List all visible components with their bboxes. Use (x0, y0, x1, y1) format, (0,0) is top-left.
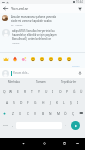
button[interactable]: N (47, 110, 53, 116)
staticText: Ü (80, 89, 83, 93)
staticText: L (63, 100, 65, 104)
staticText: D (20, 100, 23, 104)
button[interactable]: React (55, 54, 64, 63)
button[interactable]: adipsi5555 Sonulbo heryerinizi bu (2, 29, 83, 45)
button[interactable]: React (28, 54, 37, 63)
button[interactable]: React (46, 54, 55, 63)
button[interactable]: React (37, 54, 46, 63)
button[interactable]: E (15, 88, 21, 94)
button[interactable]: Voice input (77, 70, 83, 76)
button[interactable]: Ö (62, 110, 68, 116)
button[interactable]: Comma (10, 121, 15, 129)
staticText: E (17, 89, 19, 93)
button[interactable]: Back (18, 138, 28, 148)
button[interactable]: Tamam (36, 80, 46, 84)
staticText: C (27, 111, 30, 115)
staticText: Bonulhost0, cetim belirlendi ve (12, 37, 52, 41)
button[interactable]: U (43, 88, 49, 94)
button[interactable]: Backspace (77, 107, 85, 119)
button[interactable]: D (18, 99, 24, 105)
button[interactable]: Ç (70, 110, 76, 116)
staticText: Q (3, 89, 6, 93)
button[interactable]: B (40, 110, 46, 116)
button[interactable]: I (50, 88, 56, 94)
button[interactable]: Z (10, 110, 16, 116)
staticText: K (56, 100, 59, 104)
staticText: I (52, 89, 54, 93)
staticText: G (34, 100, 37, 104)
staticText: Yorum ekle... (13, 71, 30, 75)
button[interactable]: A (4, 99, 10, 105)
button[interactable]: Home (39, 138, 49, 148)
staticText: Yorumlar (11, 6, 29, 11)
staticText: B (42, 111, 45, 115)
staticText: T (31, 89, 33, 93)
staticText: hazardırlar, elbirdik ve işin paylaşım (12, 33, 57, 37)
button[interactable]: O (57, 88, 63, 94)
staticText: H (42, 100, 45, 104)
button[interactable]: C (25, 110, 31, 116)
button[interactable]: Yorum ekle... (13, 71, 77, 75)
staticText: 4s Yanıtla (11, 24, 23, 27)
staticText: N (49, 111, 52, 115)
button[interactable]: L (61, 99, 67, 105)
button[interactable]: Merhaba (8, 80, 20, 84)
button[interactable]: J (47, 99, 53, 105)
staticText: J (50, 100, 51, 104)
button[interactable]: React (64, 54, 73, 63)
button[interactable]: Ş (68, 99, 74, 105)
button[interactable]: Recents (59, 138, 69, 148)
staticText: Arzular manzaranız şahane yanında (11, 15, 56, 19)
button[interactable]: P (64, 88, 70, 94)
staticText: Ğ (73, 89, 76, 93)
staticText: ?123 (3, 124, 8, 127)
staticText: U (45, 89, 48, 93)
staticText: , (12, 123, 13, 127)
staticText: Teşekkürler (61, 80, 77, 84)
button[interactable]: Q (1, 88, 7, 94)
button[interactable]: Back (0, 4, 11, 13)
button[interactable]: H (40, 99, 46, 105)
staticText: V (34, 111, 36, 115)
staticText: A (6, 100, 9, 104)
button[interactable]: Teşekkürler (61, 80, 77, 84)
button[interactable]: R (22, 88, 28, 94)
button[interactable]: F (25, 99, 31, 105)
button[interactable]: ?123 (2, 121, 9, 129)
button[interactable]: K (54, 99, 60, 105)
button[interactable]: T (29, 88, 35, 94)
button[interactable]: Keyboard (72, 138, 82, 148)
staticText: 10:44 (76, 0, 83, 4)
button[interactable]: S (11, 99, 17, 105)
staticText: S (13, 100, 15, 104)
staticText: M (57, 111, 60, 115)
staticText: . (65, 123, 66, 127)
staticText: Y (38, 89, 40, 93)
button[interactable]: W (8, 88, 14, 94)
staticText: sizde mi varsınız kapalıdır acaba (11, 19, 52, 23)
button[interactable]: Arzular manzaranız şahane yanında (2, 15, 83, 27)
button[interactable]: Paylaş (72, 64, 80, 67)
staticText: Paylaş (72, 64, 80, 67)
button[interactable]: X (17, 110, 23, 116)
button[interactable]: G (32, 99, 38, 105)
button[interactable]: Ü (78, 88, 84, 94)
staticText: W (9, 89, 13, 93)
button[interactable]: Y (36, 88, 42, 94)
button[interactable]: React (10, 54, 19, 63)
button[interactable]: Send (71, 121, 80, 130)
button[interactable]: React (19, 54, 28, 63)
staticText: adipsi5555 Sonulbo heryerinizi bu (12, 29, 55, 33)
button[interactable]: V (32, 110, 38, 116)
staticText: R (24, 89, 27, 93)
button[interactable]: I (75, 99, 81, 105)
staticText: Z (12, 111, 14, 115)
button[interactable]: Ğ (71, 88, 77, 94)
button[interactable]: Filter comments (75, 4, 85, 13)
button[interactable]: M (55, 110, 61, 116)
button[interactable]: React (1, 54, 10, 63)
staticText: Ç (72, 111, 75, 115)
button[interactable]: Shift (0, 107, 8, 119)
